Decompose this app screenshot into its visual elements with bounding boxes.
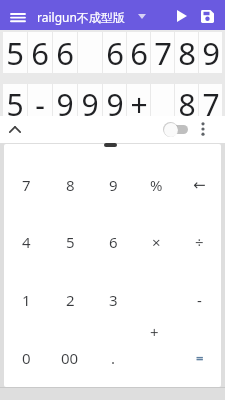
staticText: 9 bbox=[81, 84, 99, 116]
staticText: ← bbox=[193, 176, 206, 193]
staticText: + bbox=[130, 84, 148, 116]
button[interactable]: 5 bbox=[48, 213, 92, 271]
button[interactable]: - bbox=[178, 271, 221, 329]
button[interactable]: 6 bbox=[53, 32, 77, 73]
button[interactable]: 6 bbox=[103, 32, 126, 73]
button[interactable]: + bbox=[127, 84, 150, 116]
button[interactable] bbox=[163, 119, 189, 140]
button[interactable]: 4 bbox=[4, 213, 48, 271]
button[interactable]: 9 bbox=[103, 84, 126, 116]
button[interactable]: 8 bbox=[175, 32, 198, 73]
button[interactable] bbox=[135, 329, 178, 387]
staticText: 9 bbox=[109, 175, 118, 195]
button[interactable]: - bbox=[28, 84, 52, 116]
staticText: % bbox=[150, 175, 163, 195]
staticText: 0 bbox=[22, 348, 31, 368]
staticText: 5 bbox=[6, 32, 24, 73]
staticText: 9 bbox=[202, 32, 220, 73]
staticText: 9 bbox=[106, 84, 124, 116]
staticText: - bbox=[197, 290, 202, 310]
staticText: = bbox=[196, 349, 204, 367]
button[interactable]: 9 bbox=[78, 84, 102, 116]
staticText: 7 bbox=[154, 32, 172, 73]
button[interactable]: 8 bbox=[175, 84, 198, 116]
button[interactable]: 5 bbox=[3, 32, 27, 73]
button[interactable]: . bbox=[92, 329, 135, 387]
button[interactable]: 2 bbox=[48, 271, 92, 329]
staticText: railgun不成型版 bbox=[37, 9, 125, 25]
button[interactable]: 9 bbox=[92, 156, 135, 213]
staticText: . bbox=[111, 348, 116, 368]
staticText: 8 bbox=[178, 84, 196, 116]
staticText: 4 bbox=[22, 232, 31, 252]
button[interactable]: 7 bbox=[4, 156, 48, 213]
button[interactable] bbox=[194, 118, 212, 140]
button[interactable]: 6 bbox=[28, 32, 52, 73]
button[interactable]: 7 bbox=[199, 84, 222, 116]
button[interactable]: 6 bbox=[127, 32, 150, 73]
staticText: × bbox=[152, 232, 161, 252]
staticText: - bbox=[35, 84, 45, 116]
button[interactable]: % bbox=[135, 156, 178, 213]
staticText: 5 bbox=[66, 232, 75, 252]
button[interactable]: 00 bbox=[48, 329, 92, 387]
staticText: 6 bbox=[31, 32, 49, 73]
button[interactable]: × bbox=[135, 213, 178, 271]
staticText: 9 bbox=[56, 84, 74, 116]
staticText: + bbox=[150, 322, 159, 342]
staticText: 6 bbox=[56, 32, 74, 73]
button[interactable]: 8 bbox=[48, 156, 92, 213]
button[interactable]: ÷ bbox=[178, 213, 221, 271]
button[interactable]: railgun不成型版 bbox=[36, 3, 148, 27]
button[interactable] bbox=[7, 9, 29, 26]
button[interactable] bbox=[195, 5, 219, 27]
staticText: 1 bbox=[22, 290, 31, 310]
button[interactable]: 9 bbox=[199, 32, 222, 73]
button[interactable]: 6 bbox=[92, 213, 135, 271]
staticText: 2 bbox=[66, 290, 75, 310]
button[interactable]: ← bbox=[178, 156, 221, 213]
button[interactable] bbox=[172, 5, 192, 27]
button[interactable]: 9 bbox=[53, 84, 77, 116]
button[interactable]: 7 bbox=[151, 32, 174, 73]
button[interactable] bbox=[4, 118, 26, 140]
button[interactable]: 1 bbox=[4, 271, 48, 329]
staticText: 6 bbox=[109, 232, 118, 252]
staticText: ÷ bbox=[195, 232, 204, 252]
staticText: 7 bbox=[202, 84, 220, 116]
staticText: 6 bbox=[130, 32, 148, 73]
button[interactable]: 0 bbox=[4, 329, 48, 387]
button[interactable]: = bbox=[178, 329, 221, 387]
staticText: 6 bbox=[106, 32, 124, 73]
button[interactable]: 5 bbox=[3, 84, 27, 116]
staticText: 00 bbox=[61, 348, 79, 368]
staticText: 8 bbox=[66, 175, 75, 195]
button[interactable]: 3 bbox=[92, 271, 135, 329]
staticText: 3 bbox=[109, 290, 118, 310]
staticText: 7 bbox=[22, 175, 31, 195]
staticText: 5 bbox=[6, 84, 24, 116]
button[interactable]: + bbox=[132, 315, 176, 349]
staticText: 8 bbox=[178, 32, 196, 73]
